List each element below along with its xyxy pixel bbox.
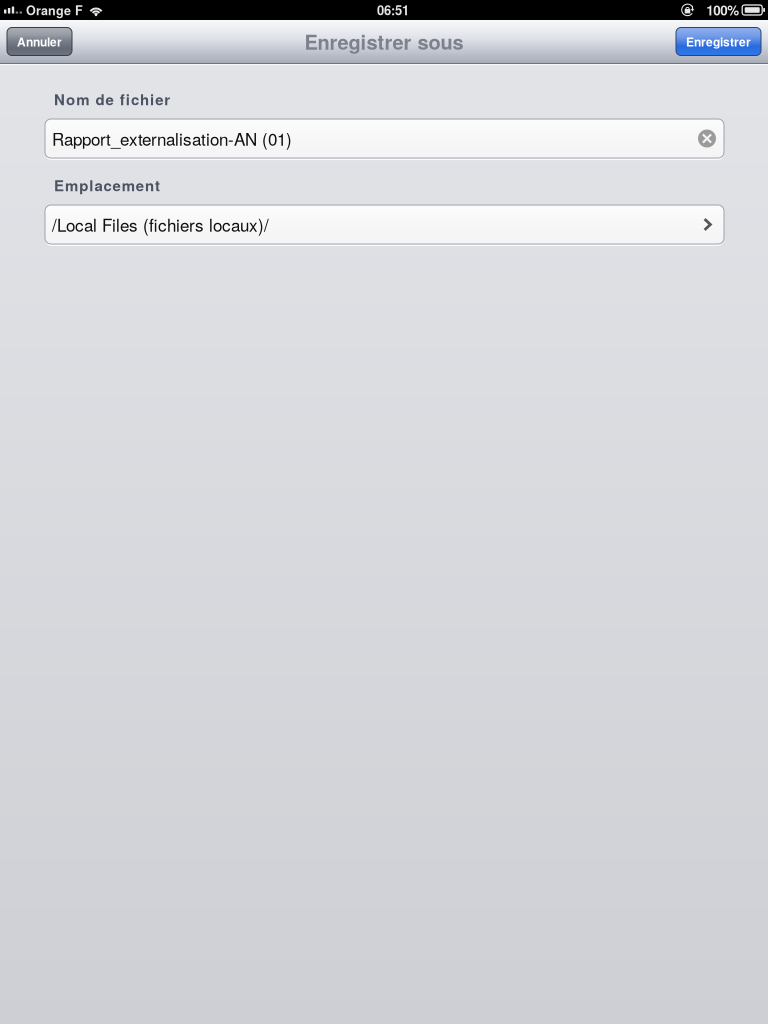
staticText: 06:51 [377,1,409,19]
button[interactable]: /Local Files (fichiers locaux)/ [0,205,768,244]
staticText: Emplacement [54,174,160,196]
button[interactable]: Enregistrer [676,27,761,55]
staticText: Enregistrer sous [304,27,463,56]
staticText: Enregistrer [686,33,751,50]
staticText: 100% [706,0,739,20]
staticText: Nom de fichier [54,88,170,110]
staticText: Rapport_externalisation-AN (01) [52,126,292,151]
button[interactable]: Annuler [7,27,72,55]
staticText: Orange F [26,1,83,19]
staticText: /Local Files (fichiers locaux)/ [52,212,269,237]
staticText: Annuler [17,33,62,50]
button[interactable]: Effacer le texte [698,129,716,147]
